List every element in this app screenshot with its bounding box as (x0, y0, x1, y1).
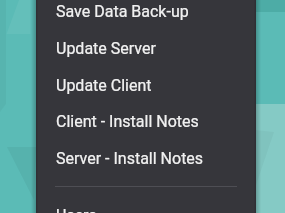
button[interactable]: Update Client (36, 67, 256, 104)
staticText: Update Client (56, 76, 152, 95)
button[interactable]: Users (36, 197, 256, 213)
button[interactable]: Client - Install Notes (36, 103, 256, 140)
button[interactable]: Save Data Back-up (36, 0, 256, 30)
staticText: Update Server (56, 39, 156, 58)
staticText: Save Data Back-up (56, 2, 189, 21)
staticText: Client - Install Notes (56, 112, 199, 131)
button[interactable]: Update Server (36, 30, 256, 67)
button[interactable]: Server - Install Notes (36, 140, 256, 177)
staticText: Users (56, 206, 97, 213)
staticText: Server - Install Notes (56, 149, 204, 168)
